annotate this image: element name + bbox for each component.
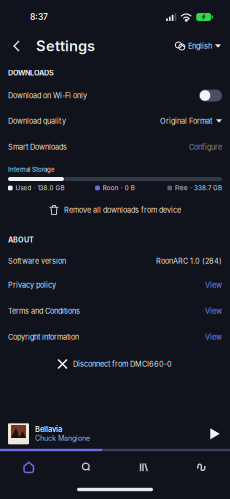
staticText: Disconnect from DMCI660-0 — [73, 360, 172, 368]
button[interactable]: Download on Wi-Fi only — [0, 83, 230, 108]
staticText: Free · 338.7 GB — [175, 184, 222, 192]
button[interactable]: Search — [57, 454, 115, 480]
staticText: English — [188, 42, 212, 50]
staticText: Bellavia — [35, 425, 62, 434]
staticText: Remove all downloads from device — [64, 206, 181, 214]
staticText: ABOUT — [8, 236, 34, 244]
staticText: Privacy policy — [8, 281, 56, 289]
staticText: Software version — [8, 257, 66, 265]
button[interactable]: Library — [115, 454, 172, 480]
staticText: Download quality — [8, 117, 66, 125]
staticText: Configure — [189, 143, 222, 151]
staticText: View — [205, 307, 222, 315]
button[interactable]: Disconnect from DMCI660-0 — [58, 356, 172, 372]
button[interactable]: Terms and Conditions — [0, 298, 230, 324]
staticText: 8:37 — [30, 12, 48, 22]
staticText: View — [205, 333, 222, 341]
staticText: DOWNLOADS — [8, 69, 54, 77]
button[interactable]: English — [175, 35, 221, 57]
button[interactable]: Home — [0, 454, 57, 480]
button[interactable]: Remove all downloads from device — [49, 202, 181, 218]
button[interactable]: Bellavia — [0, 416, 230, 454]
staticText: Settings — [36, 37, 95, 55]
button[interactable]: Smart Downloads — [0, 134, 230, 160]
staticText: View — [205, 281, 222, 289]
staticText: Terms and Conditions — [8, 307, 80, 315]
staticText: RoonARC 1.0 (284) — [156, 257, 222, 265]
staticText: Chuck Mangione — [35, 434, 90, 442]
button[interactable]: Back — [8, 34, 25, 58]
button[interactable]: Privacy policy — [0, 272, 230, 298]
staticText: Used · 138.0 GB — [16, 184, 65, 192]
staticText: Original Format — [160, 117, 212, 125]
button[interactable]: Play — [208, 427, 222, 441]
button[interactable]: Copyright information — [0, 324, 230, 350]
staticText: Roon · 0 B — [103, 184, 135, 192]
staticText: Copyright information — [8, 333, 79, 341]
button[interactable]: Download quality — [0, 108, 230, 134]
staticText: Internal Storage — [8, 166, 55, 173]
button[interactable]: Now Playing — [172, 454, 230, 480]
staticText: Smart Downloads — [8, 143, 67, 151]
button[interactable]: Software version — [0, 250, 230, 272]
staticText: Download on Wi-Fi only — [8, 91, 87, 100]
